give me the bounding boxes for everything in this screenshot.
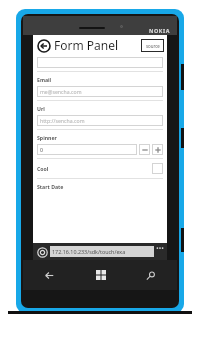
button[interactable]: Start: [75, 260, 126, 290]
button[interactable]: Increase: [152, 144, 163, 155]
button[interactable]: http://sencha.com: [37, 115, 163, 126]
staticText: Form Panel: [54, 37, 141, 53]
button[interactable]: Decrease: [139, 144, 150, 155]
button[interactable]: More options: [156, 245, 164, 259]
staticText: http://sencha.com: [40, 117, 85, 124]
staticText: Spinner: [37, 134, 57, 141]
button[interactable]: [37, 57, 163, 68]
button[interactable]: Back: [36, 38, 51, 53]
button[interactable]: 0: [37, 144, 137, 155]
button[interactable]: Refresh: [36, 246, 48, 258]
staticText: Email: [37, 76, 52, 83]
button[interactable]: Search: [126, 260, 177, 290]
staticText: 0: [40, 146, 43, 153]
button[interactable]: Cool: [37, 163, 163, 174]
staticText: NOKIA: [149, 27, 171, 34]
staticText: Cool: [37, 165, 49, 172]
button[interactable]: me@sencha.com: [37, 86, 163, 97]
button[interactable]: source: [141, 39, 164, 52]
staticText: Url: [37, 105, 45, 112]
staticText: Start Date: [37, 183, 64, 190]
staticText: source: [146, 43, 160, 49]
staticText: me@sencha.com: [40, 88, 82, 95]
button[interactable]: 172.16.10.233/sdk/touch/exa: [50, 246, 154, 257]
button[interactable]: Back: [23, 260, 75, 290]
staticText: 172.16.10.233/sdk/touch/exa: [52, 248, 126, 255]
